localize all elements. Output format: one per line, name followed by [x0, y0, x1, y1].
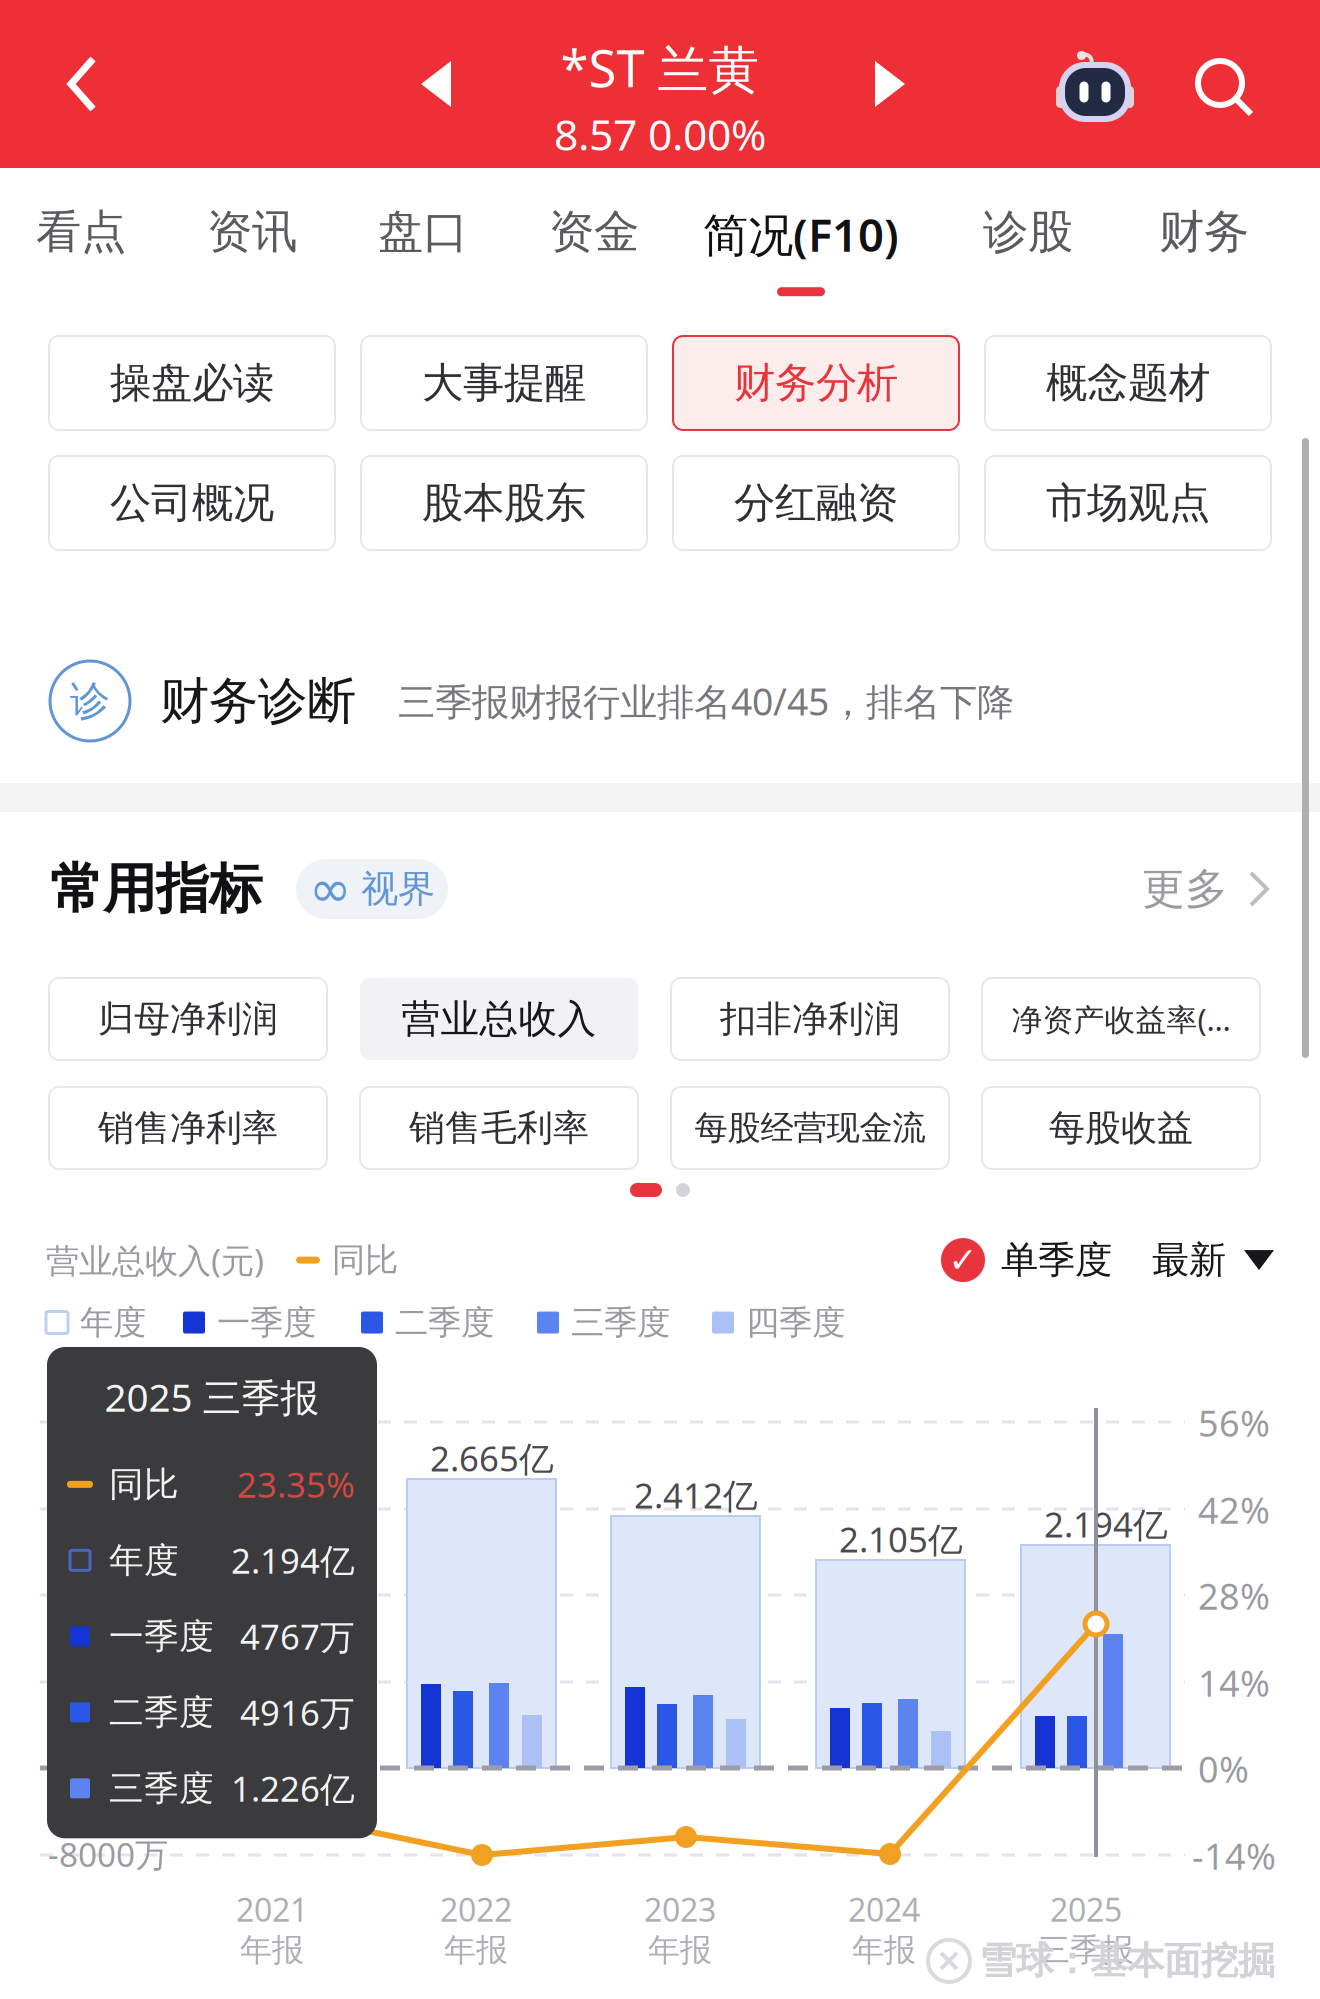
- button[interactable]: ∞: [296, 859, 448, 919]
- staticText: 诊股: [983, 204, 1073, 260]
- staticText: 年度: [109, 1539, 179, 1582]
- button[interactable]: 资讯: [189, 168, 315, 336]
- staticText: 4916万: [240, 1689, 355, 1735]
- staticText: 雪球：基本面挖掘: [979, 1938, 1275, 1984]
- staticText: 年报: [444, 1930, 508, 1970]
- button[interactable]: ✓: [941, 1237, 1112, 1283]
- staticText: 2.194亿: [1044, 1501, 1168, 1547]
- staticText: 最新: [1152, 1237, 1226, 1283]
- staticText: 盘口: [378, 204, 468, 260]
- button[interactable]: Search: [1170, 4, 1280, 172]
- button[interactable]: 分红融资: [673, 456, 959, 550]
- staticText: 大事提醒: [422, 358, 586, 408]
- staticText: 每股收益: [1049, 1106, 1193, 1150]
- staticText: 财务诊断: [160, 671, 356, 731]
- staticText: 2025: [1050, 1888, 1122, 1930]
- staticText: 市场观点: [1046, 478, 1210, 528]
- staticText: 营业总收入: [401, 995, 596, 1043]
- button[interactable]: 归母净利润: [49, 978, 327, 1060]
- staticText: 财务分析: [734, 358, 898, 408]
- button[interactable]: 营业总收入: [360, 978, 638, 1060]
- button[interactable]: 盘口: [360, 168, 486, 336]
- staticText: 0%: [1198, 1745, 1249, 1793]
- staticText: 概念题材: [1046, 358, 1210, 408]
- staticText: 四季度: [746, 1302, 845, 1343]
- button[interactable]: 净资产收益率(...: [982, 978, 1260, 1060]
- staticText: 2025 三季报: [104, 1371, 319, 1422]
- staticText: *ST 兰黄: [560, 34, 759, 101]
- button[interactable]: 简况(F10): [697, 168, 905, 336]
- button[interactable]: 资金: [531, 168, 657, 336]
- staticText: 股本股东: [422, 478, 586, 528]
- button[interactable]: 大事提醒: [361, 336, 647, 430]
- staticText: 年报: [240, 1930, 304, 1970]
- staticText: -8000万: [48, 1832, 168, 1876]
- staticText: 一季度: [109, 1615, 214, 1658]
- staticText: 资金: [549, 204, 639, 260]
- button[interactable]: Next stock: [835, 0, 945, 168]
- staticText: 操盘必读: [110, 358, 274, 408]
- staticText: 分红融资: [734, 478, 898, 528]
- button[interactable]: 操盘必读: [49, 336, 335, 430]
- staticText: 同比: [109, 1463, 179, 1506]
- button[interactable]: AI assistant: [1040, 2, 1150, 170]
- staticText: 资讯: [207, 204, 297, 260]
- button[interactable]: 公司概况: [49, 456, 335, 550]
- button[interactable]: 看点: [18, 168, 144, 336]
- staticText: 看点: [36, 204, 126, 260]
- staticText: 2022: [440, 1888, 512, 1930]
- staticText: 8.57 0.00%: [554, 105, 766, 162]
- button[interactable]: 概念题材: [985, 336, 1271, 430]
- staticText: 三季度: [109, 1767, 214, 1810]
- button[interactable]: 每股经营现金流: [671, 1087, 949, 1169]
- button[interactable]: 财务: [1141, 168, 1267, 336]
- button[interactable]: 诊股: [965, 168, 1091, 336]
- staticText: 一季度: [217, 1302, 316, 1343]
- button[interactable]: 每股收益: [982, 1087, 1260, 1169]
- button[interactable]: 股本股东: [361, 456, 647, 550]
- staticText: 2024: [848, 1888, 920, 1930]
- staticText: 28%: [1198, 1572, 1270, 1620]
- staticText: 2023: [644, 1888, 716, 1930]
- staticText: 财务: [1159, 204, 1249, 260]
- staticText: 23.35%: [237, 1461, 355, 1507]
- button[interactable]: 最新: [1152, 1237, 1274, 1283]
- staticText: 常用指标: [50, 856, 262, 922]
- button[interactable]: 更多: [1142, 853, 1270, 925]
- staticText: ✓: [948, 1240, 977, 1280]
- staticText: 销售毛利率: [409, 1106, 589, 1150]
- staticText: ∞: [309, 860, 351, 918]
- staticText: 2021: [236, 1888, 308, 1930]
- staticText: 简况(F10): [703, 204, 899, 264]
- button[interactable]: 市场观点: [985, 456, 1271, 550]
- staticText: 2.412亿: [634, 1472, 758, 1518]
- button[interactable]: 销售毛利率: [360, 1087, 638, 1169]
- staticText: 1.226亿: [231, 1765, 355, 1811]
- staticText: 三季报: [1038, 1930, 1134, 1970]
- staticText: 年报: [648, 1930, 712, 1970]
- staticText: 公司概况: [110, 478, 274, 528]
- button[interactable]: Back: [27, 0, 137, 168]
- staticText: 营业总收入(元): [46, 1238, 264, 1282]
- staticText: -14%: [1192, 1832, 1276, 1880]
- staticText: 年报: [852, 1930, 916, 1970]
- staticText: 56%: [1198, 1399, 1270, 1447]
- staticText: 二季度: [395, 1302, 494, 1343]
- button[interactable]: 财务分析: [673, 336, 959, 430]
- button[interactable]: 销售净利率: [49, 1087, 327, 1169]
- staticText: 净资产收益率(...: [1011, 999, 1230, 1039]
- staticText: 归母净利润: [98, 997, 278, 1041]
- staticText: 三季报财报行业排名40/45，排名下降: [398, 676, 1014, 726]
- button[interactable]: 诊: [0, 619, 1320, 783]
- staticText: 年度: [80, 1302, 146, 1343]
- staticText: 每股经营现金流: [694, 1107, 925, 1148]
- button[interactable]: 扣非净利润: [671, 978, 949, 1060]
- staticText: 2.665亿: [430, 1435, 554, 1481]
- staticText: 视界: [361, 866, 435, 912]
- button[interactable]: Previous stock: [381, 0, 491, 168]
- staticText: 三季度: [571, 1302, 670, 1343]
- staticText: 单季度: [1001, 1237, 1112, 1283]
- staticText: 二季度: [109, 1691, 214, 1734]
- staticText: 42%: [1198, 1486, 1270, 1534]
- staticText: 诊: [70, 676, 110, 725]
